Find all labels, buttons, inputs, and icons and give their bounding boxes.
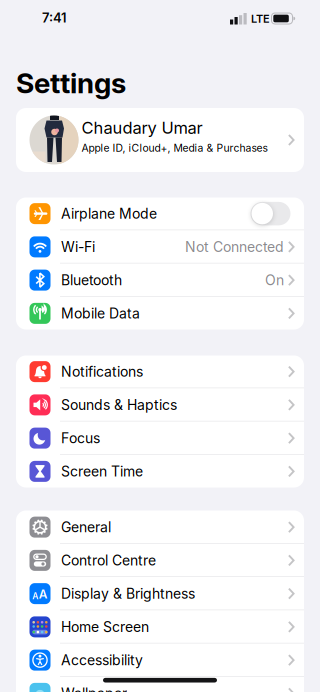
button[interactable]: Bluetooth [16,263,304,297]
staticText: Mobile Data [61,305,140,322]
staticText: Apple ID, iCloud+, Media & Purchases [81,142,267,154]
button[interactable]: Accessibility [16,643,304,677]
button[interactable]: Sounds & Haptics [16,388,304,421]
button[interactable]: Chaudary Umar [16,108,304,172]
button[interactable]: Wallpaper [16,677,304,692]
button[interactable]: Focus [16,421,304,455]
staticText: A [32,591,38,601]
staticText: Display & Brightness [61,585,195,602]
staticText: Home Screen [61,618,149,635]
staticText: Settings [16,66,126,100]
button[interactable]: Notifications [16,355,304,388]
button[interactable]: Wi-Fi [16,230,304,263]
staticText: LTE [251,12,270,25]
staticText: Airplane Mode [61,205,157,222]
staticText: Control Centre [61,552,156,569]
staticText: Sounds & Haptics [61,396,177,413]
button[interactable]: Airplane Mode [250,202,304,225]
button[interactable]: General [16,510,304,544]
button[interactable]: Mobile Data [16,297,304,330]
staticText: Not Connected [185,238,284,255]
button[interactable]: Home Screen [16,610,304,643]
staticText: 7:41 [42,10,66,26]
staticText: Focus [61,430,100,447]
staticText: Chaudary Umar [81,118,202,138]
staticText: Accessibility [61,652,143,669]
staticText: Screen Time [61,463,143,480]
staticText: On [265,272,284,289]
button[interactable]: Control Centre [16,544,304,577]
staticText: Wallpaper [61,685,127,692]
staticText: General [61,519,111,536]
staticText: Bluetooth [61,272,122,289]
button[interactable]: Screen Time [16,455,304,488]
staticText: A [39,587,48,601]
staticText: Wi-Fi [61,238,95,255]
staticText: Notifications [61,363,143,380]
button[interactable]: A [16,577,304,610]
